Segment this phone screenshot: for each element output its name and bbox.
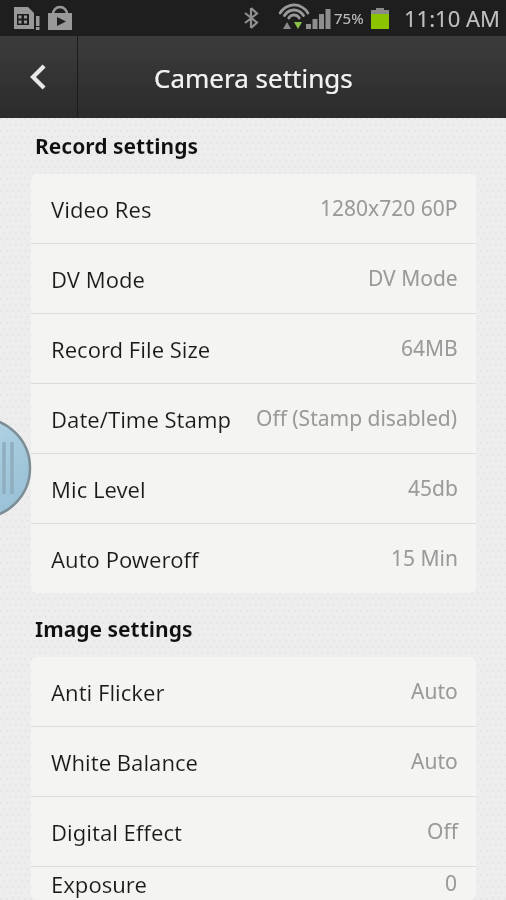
staticText: Record File Size [51,334,211,364]
button[interactable]: Back [0,36,77,118]
staticText: Auto Poweroff [51,544,199,574]
button[interactable]: Digital Effect [31,797,476,866]
staticText: Off (Stamp disabled) [256,404,458,433]
staticText: Record settings [35,132,199,161]
staticText: 15 Min [391,544,458,573]
staticText: Mic Level [51,474,146,504]
staticText: White Balance [51,747,199,777]
staticText: Date/Time Stamp [51,404,232,434]
staticText: Auto [411,677,458,706]
staticText: Exposure [51,869,147,899]
button[interactable]: Exposure [31,867,476,900]
button[interactable]: Date/Time Stamp [31,384,476,453]
staticText: DV Mode [51,264,145,294]
staticText: Image settings [35,615,193,644]
staticText: Anti Flicker [51,677,165,707]
staticText: 0 [445,869,458,898]
staticText: 64MB [401,334,458,363]
staticText: Off [427,817,458,846]
button[interactable]: Mic Level [31,454,476,523]
button[interactable]: White Balance [31,727,476,796]
staticText: Video Res [51,194,152,224]
staticText: Auto [411,747,458,776]
staticText: 75% [334,8,364,28]
staticText: Digital Effect [51,817,182,847]
button[interactable]: Video Res [31,174,476,243]
staticText: 45db [408,474,458,503]
button[interactable]: Auto Poweroff [31,524,476,593]
button[interactable]: DV Mode [31,244,476,313]
staticText: 11:10 AM [404,3,500,33]
button[interactable]: Anti Flicker [31,657,476,726]
staticText: DV Mode [368,264,458,293]
staticText: 1280x720 60P [320,194,458,223]
staticText: Camera settings [154,60,353,95]
button[interactable]: Record File Size [31,314,476,383]
